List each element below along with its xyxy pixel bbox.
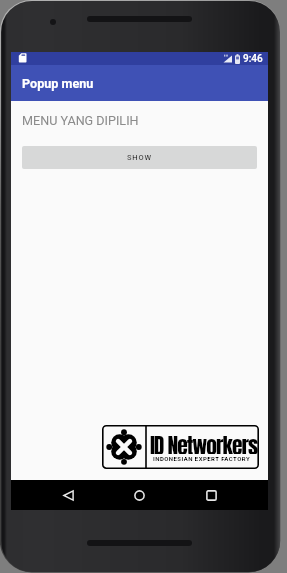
staticText: MENU YANG DIPILIH	[22, 113, 139, 128]
staticText: ID Networkers	[150, 430, 258, 454]
button[interactable]: Home	[119, 480, 159, 510]
staticText: SHOW	[127, 153, 152, 162]
button[interactable]: SHOW	[22, 146, 257, 169]
button[interactable]: Recents	[191, 480, 231, 510]
staticText: INDONESIAN EXPERT FACTORY	[153, 455, 251, 462]
staticText: 9:46	[243, 53, 263, 65]
button[interactable]: Back	[48, 480, 88, 510]
staticText: Popup menu	[22, 76, 94, 91]
